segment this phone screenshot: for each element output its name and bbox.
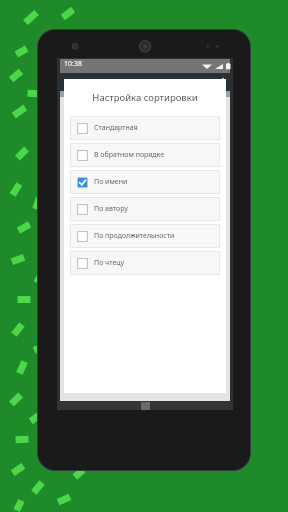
button[interactable]: По автору — [70, 197, 220, 221]
staticText: Стандартная — [94, 123, 138, 133]
button[interactable]: Menu — [60, 73, 230, 91]
button[interactable]: Menu — [63, 76, 75, 88]
button[interactable]: В обратном порядке — [70, 143, 220, 167]
button[interactable]: По чтецу — [70, 251, 220, 275]
staticText: По автору — [94, 204, 128, 214]
staticText: По чтецу — [94, 258, 125, 268]
staticText: 10:38 — [64, 59, 82, 69]
button[interactable]: More options — [220, 75, 226, 89]
staticText: По продолжительности — [94, 231, 175, 241]
button[interactable]: По продолжительности — [70, 224, 220, 248]
button[interactable]: Стандартная — [70, 116, 220, 140]
staticText: По имени — [94, 177, 128, 187]
button[interactable]: По имени — [70, 170, 220, 194]
staticText: В обратном порядке — [94, 150, 164, 160]
staticText: Настройка сортировки — [64, 91, 226, 104]
